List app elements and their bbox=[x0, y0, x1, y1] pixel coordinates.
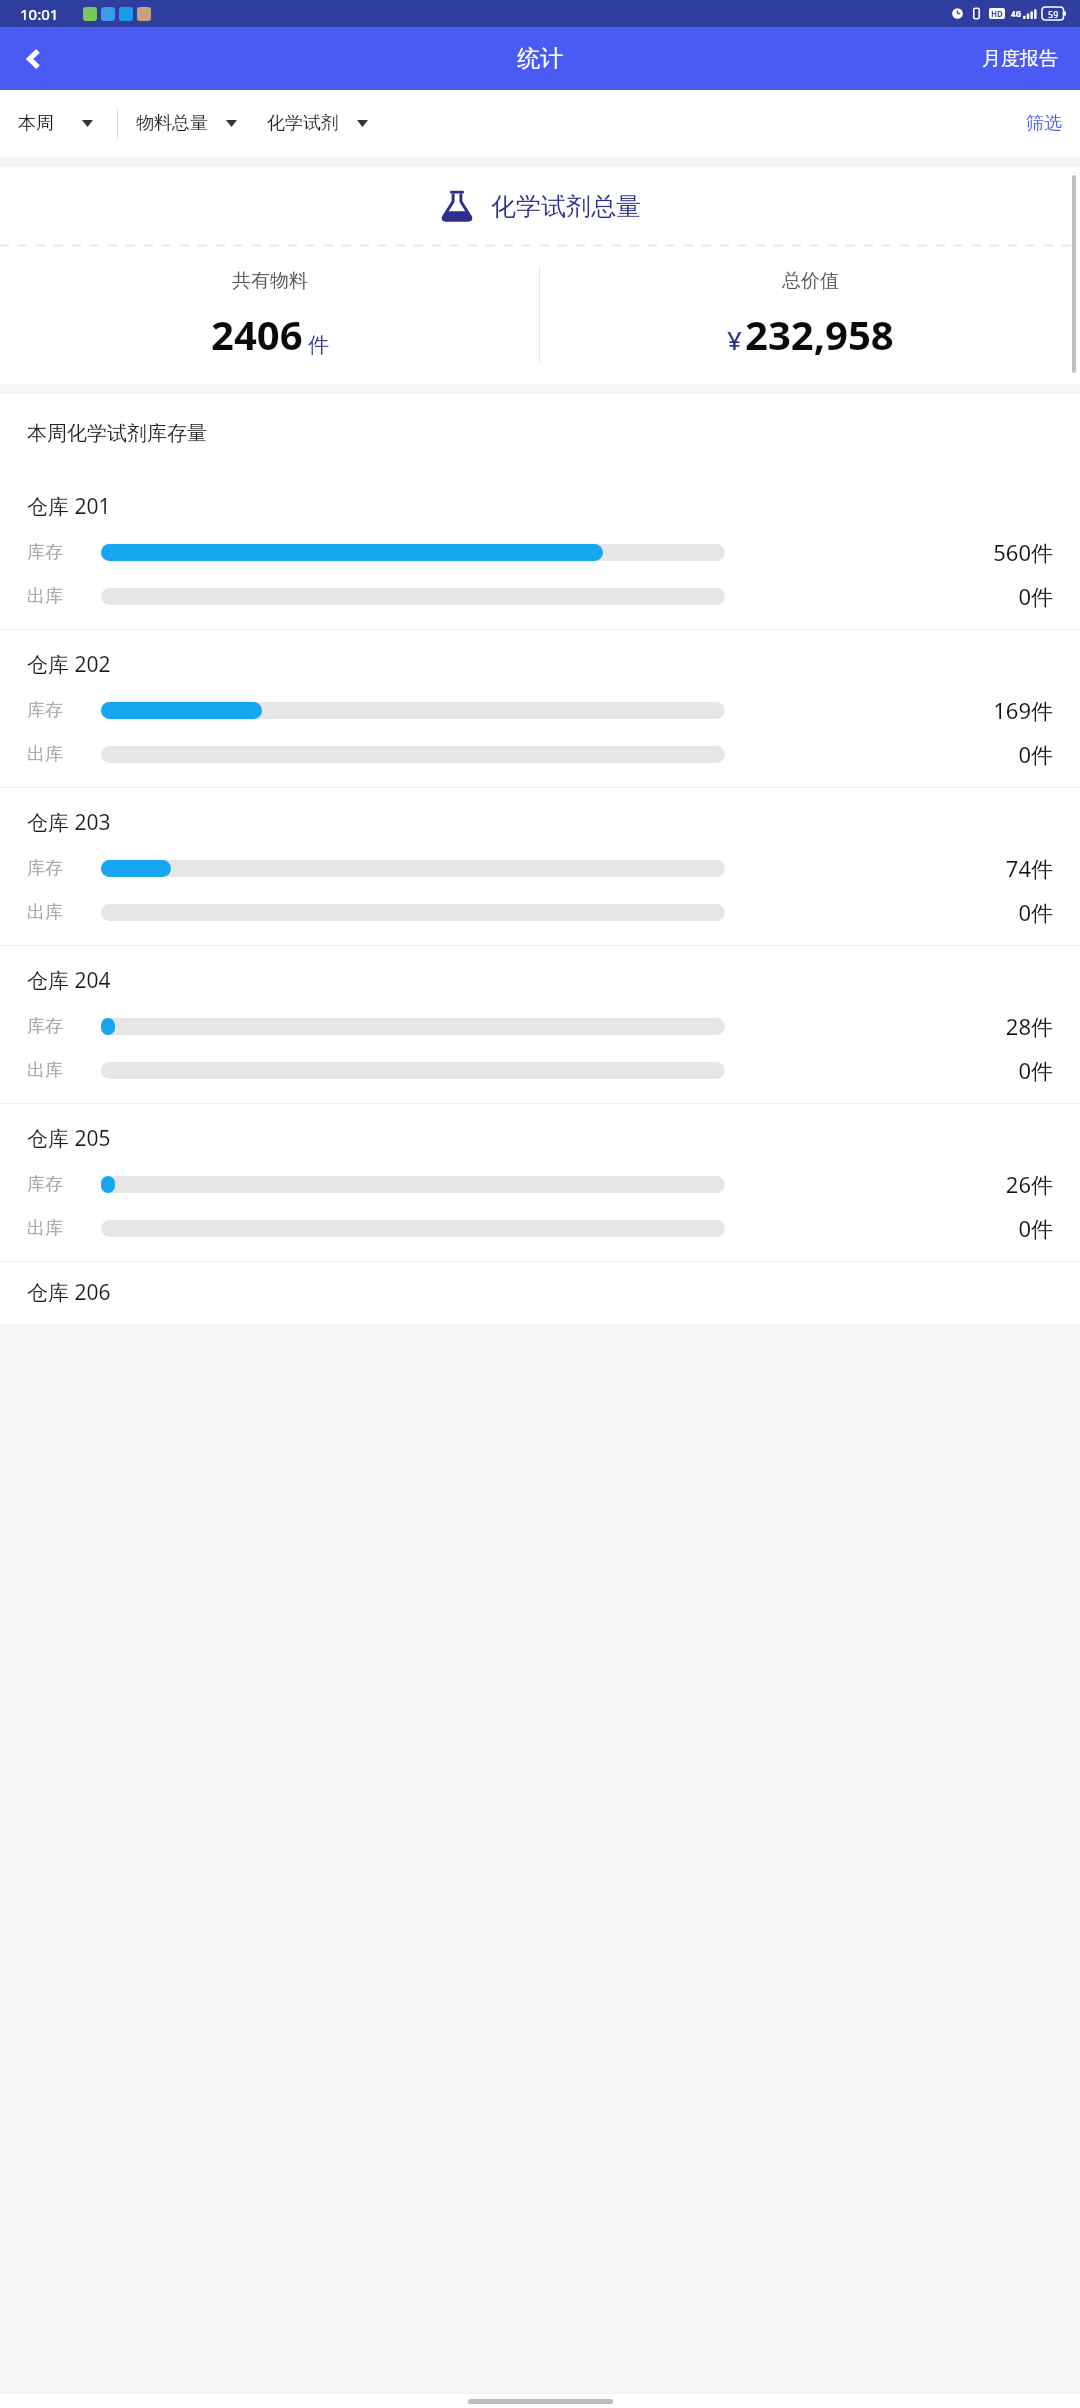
staticText: 本周 bbox=[18, 112, 54, 135]
staticText: 0件 bbox=[938, 1213, 1053, 1243]
staticText: 总价值 bbox=[782, 269, 839, 293]
staticText: 仓库 203 bbox=[27, 808, 111, 837]
button[interactable]: 本周 bbox=[0, 112, 103, 135]
staticText: 筛选 bbox=[1026, 112, 1062, 135]
staticText: 仓库 206 bbox=[27, 1278, 111, 1307]
staticText: 2406 bbox=[211, 307, 303, 361]
staticText: 59 bbox=[1048, 8, 1059, 20]
staticText: 10:01 bbox=[20, 4, 59, 24]
staticText: 出库 bbox=[27, 585, 101, 608]
staticText: 本周化学试剂库存量 bbox=[27, 421, 207, 446]
button[interactable]: 仓库 206 bbox=[0, 1262, 1080, 1324]
staticText: 出库 bbox=[27, 901, 101, 924]
staticText: 28件 bbox=[938, 1011, 1053, 1041]
staticText: 件 bbox=[308, 332, 329, 358]
staticText: 74件 bbox=[938, 853, 1053, 883]
staticText: 仓库 201 bbox=[27, 492, 111, 521]
staticText: 0件 bbox=[938, 581, 1053, 611]
staticText: 仓库 202 bbox=[27, 650, 111, 679]
button[interactable]: 物料总量 bbox=[132, 112, 241, 135]
button[interactable]: 仓库 203 bbox=[0, 788, 1080, 945]
staticText: 物料总量 bbox=[136, 112, 208, 135]
button[interactable]: 仓库 204 bbox=[0, 946, 1080, 1103]
staticText: 月度报告 bbox=[982, 47, 1058, 71]
staticText: 仓库 205 bbox=[27, 1124, 111, 1153]
staticText: 仓库 204 bbox=[27, 966, 111, 995]
staticText: 0件 bbox=[938, 897, 1053, 927]
staticText: 0件 bbox=[938, 1055, 1053, 1085]
staticText: 232,958 bbox=[745, 307, 894, 361]
staticText: 26件 bbox=[938, 1169, 1053, 1199]
button[interactable]: 筛选 bbox=[1016, 112, 1080, 135]
staticText: 0件 bbox=[938, 739, 1053, 769]
staticText: 库存 bbox=[27, 1015, 101, 1038]
staticText: 统计 bbox=[517, 44, 563, 73]
staticText: 4G bbox=[1011, 8, 1022, 19]
button[interactable]: 仓库 201 bbox=[0, 472, 1080, 629]
staticText: 库存 bbox=[27, 541, 101, 564]
button[interactable]: 月度报告 bbox=[960, 27, 1080, 90]
button[interactable]: 返回 bbox=[0, 27, 68, 90]
staticText: ¥ bbox=[727, 322, 742, 357]
staticText: 库存 bbox=[27, 857, 101, 880]
staticText: 化学试剂 bbox=[267, 112, 339, 135]
staticText: 共有物料 bbox=[232, 269, 308, 293]
staticText: 169件 bbox=[938, 695, 1053, 725]
staticText: 出库 bbox=[27, 743, 101, 766]
button[interactable]: 仓库 202 bbox=[0, 630, 1080, 787]
staticText: 560件 bbox=[938, 537, 1053, 567]
staticText: 出库 bbox=[27, 1217, 101, 1240]
staticText: 库存 bbox=[27, 699, 101, 722]
staticText: 库存 bbox=[27, 1173, 101, 1196]
button[interactable]: 化学试剂 bbox=[263, 112, 372, 135]
staticText: 化学试剂总量 bbox=[491, 191, 641, 222]
staticText: HD bbox=[991, 8, 1003, 19]
staticText: 出库 bbox=[27, 1059, 101, 1082]
button[interactable]: 仓库 205 bbox=[0, 1104, 1080, 1261]
